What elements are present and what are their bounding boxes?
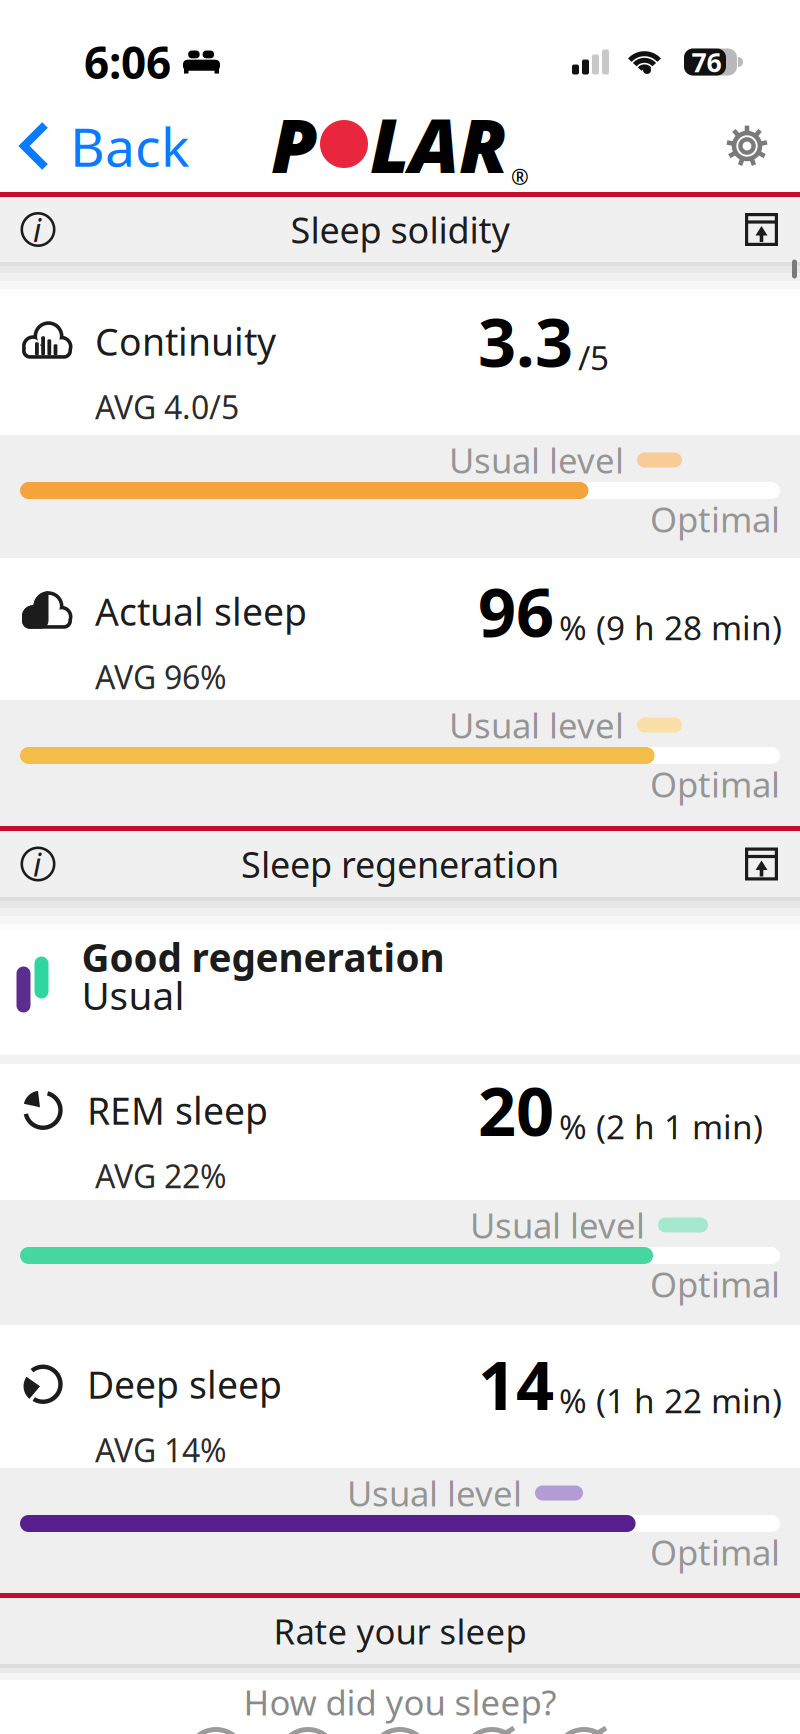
staticText: P [271,94,318,194]
button[interactable]: Info [0,211,56,247]
button[interactable]: Good sleep [446,1727,538,1734]
staticText: % (1 h 22 min) [559,1378,782,1423]
staticText: Good regeneration [81,931,444,983]
staticText: Usual level [470,1202,645,1248]
staticText: % (9 h 28 min) [559,605,782,650]
staticText: i [33,843,41,885]
staticText: AVG 96% [95,655,227,698]
staticText: 14 [478,1340,554,1428]
staticText: 96 [478,567,554,655]
staticText: 76 [691,44,721,80]
staticText: Deep sleep [87,1359,282,1409]
staticText: AVG 4.0/5 [95,385,239,428]
staticText: Optimal [650,1529,780,1575]
staticText: % (2 h 1 min) [559,1104,763,1149]
staticText: Actual sleep [95,586,307,636]
staticText: Sleep solidity [290,206,509,253]
staticText: Usual level [347,1470,522,1516]
staticText: Optimal [650,761,780,807]
button[interactable]: Settings [725,124,800,168]
staticText: AVG 14% [95,1428,227,1471]
staticText: Optimal [650,496,780,542]
staticText: 6:06 [84,33,171,91]
button[interactable]: Expand [745,847,800,880]
staticText: 20 [478,1066,554,1154]
staticText: Continuity [95,316,276,366]
staticText: Usual level [449,437,624,483]
staticText: /5 [578,335,609,380]
staticText: i [33,208,41,251]
staticText: LAR [370,94,508,194]
button[interactable]: Expand [745,213,800,246]
button[interactable]: Info [0,846,56,882]
staticText: Usual [81,969,184,1021]
button[interactable]: Very poor sleep [170,1727,262,1734]
button[interactable]: OK sleep [354,1727,446,1734]
staticText: REM sleep [87,1085,268,1135]
staticText: Back [70,111,189,181]
button[interactable]: Very good sleep [538,1727,630,1734]
staticText: How did you sleep? [243,1679,556,1725]
staticText: Usual level [449,702,624,748]
button[interactable]: Poor sleep [262,1727,354,1734]
staticText: ® [511,162,529,190]
staticText: Sleep regeneration [241,840,559,888]
staticText: 3.3 [478,297,573,385]
staticText: AVG 22% [95,1154,227,1197]
staticText: Rate your sleep [273,1608,526,1654]
button[interactable]: Back [0,111,189,181]
staticText: Optimal [650,1261,780,1307]
